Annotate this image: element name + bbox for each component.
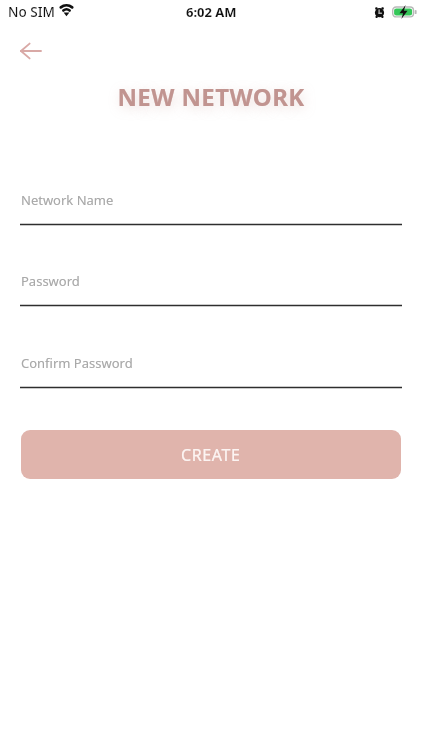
staticText: Network Name — [21, 191, 114, 209]
staticText: NEW NETWORK — [0, 80, 422, 113]
staticText: CREATE — [181, 444, 241, 466]
button[interactable]: Back — [14, 33, 50, 69]
staticText: No SIM — [8, 3, 55, 21]
staticText: Password — [21, 272, 80, 290]
button[interactable]: Network Name — [20, 181, 402, 226]
button[interactable]: Confirm Password — [20, 344, 402, 389]
staticText: 6:02 AM — [186, 3, 237, 21]
button[interactable]: Password — [20, 262, 402, 307]
button[interactable]: CREATE — [21, 430, 401, 479]
staticText: Confirm Password — [21, 354, 133, 372]
